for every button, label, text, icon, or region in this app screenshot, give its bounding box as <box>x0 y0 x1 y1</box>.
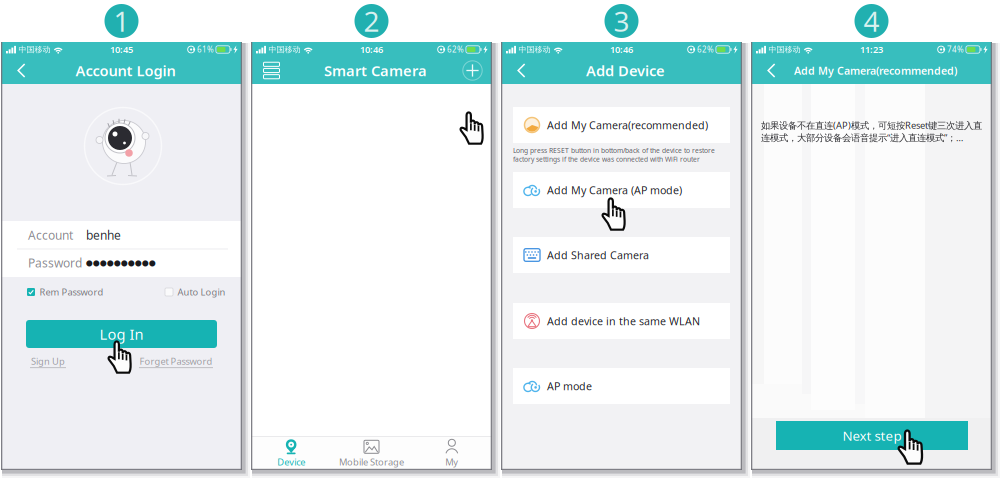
staticText: 62% <box>697 44 714 55</box>
button[interactable]: Back <box>17 64 26 77</box>
staticText: Auto Login <box>177 286 225 298</box>
staticText: Mobile Storage <box>339 456 404 468</box>
staticText: 10:45 <box>110 43 133 56</box>
staticText: Next step <box>842 427 901 444</box>
staticText: Add Shared Camera <box>547 248 649 262</box>
staticText: 中国移动 <box>518 45 550 54</box>
staticText: 如果设备不在直连(AP)模式，可短按Reset键三次进入直连模式，大部分设备会语… <box>761 119 982 144</box>
staticText: 2 <box>363 2 379 40</box>
staticText: 10:46 <box>360 43 383 56</box>
staticText: My <box>445 456 458 468</box>
staticText: benhe <box>86 227 121 243</box>
staticText: Smart Camera <box>324 61 427 80</box>
button[interactable]: Menu <box>258 57 284 84</box>
staticText: Long press RESET button in bottom/back o… <box>513 146 715 164</box>
button[interactable]: Auto Login <box>165 286 228 298</box>
staticText: Rem Password <box>39 286 103 298</box>
staticText: 1 <box>113 2 129 40</box>
staticText: 11:23 <box>860 43 883 56</box>
button[interactable]: Forget Password <box>137 355 215 368</box>
button[interactable]: Device <box>251 438 331 468</box>
button[interactable]: Add device <box>458 57 486 84</box>
staticText: Add My Camera (AP mode) <box>547 183 682 197</box>
staticText: 61% <box>197 44 214 55</box>
button[interactable]: Back <box>767 64 776 77</box>
staticText: Add My Camera(recommended) <box>547 118 708 132</box>
staticText: Account Login <box>75 61 175 80</box>
button[interactable]: Add My Camera (AP mode) <box>513 172 730 208</box>
button[interactable]: Add device in the same WLAN <box>513 303 730 339</box>
button[interactable]: Next step <box>776 421 968 450</box>
staticText: 74% <box>947 44 964 55</box>
staticText: Account <box>28 227 73 243</box>
staticText: 4 <box>863 2 879 40</box>
button[interactable]: Log In <box>26 320 217 348</box>
staticText: 3 <box>613 2 629 40</box>
staticText: Add My Camera(recommended) <box>794 63 957 78</box>
staticText: ●●●●●●●●●● <box>86 258 156 267</box>
button[interactable]: AP mode <box>513 368 730 404</box>
staticText: Device <box>277 456 305 468</box>
button[interactable]: Add Shared Camera <box>513 237 730 273</box>
staticText: 10:46 <box>610 43 633 56</box>
staticText: 62% <box>447 44 464 55</box>
button[interactable]: Sign Up <box>28 355 68 368</box>
staticText: Sign Up <box>31 355 65 367</box>
button[interactable]: Mobile Storage <box>331 438 412 468</box>
button[interactable]: Rem Password <box>27 286 105 298</box>
button[interactable]: Add My Camera(recommended) <box>513 107 730 143</box>
button[interactable]: Back <box>517 64 526 77</box>
staticText: Forget Password <box>139 355 212 367</box>
staticText: Log In <box>99 324 143 344</box>
staticText: 中国移动 <box>18 45 50 54</box>
staticText: Password <box>28 255 82 271</box>
button[interactable]: My <box>412 438 492 468</box>
staticText: 中国移动 <box>768 45 800 54</box>
staticText: 中国移动 <box>268 45 300 54</box>
staticText: Add device in the same WLAN <box>547 314 700 328</box>
staticText: AP mode <box>547 379 592 393</box>
staticText: Add Device <box>586 61 665 80</box>
